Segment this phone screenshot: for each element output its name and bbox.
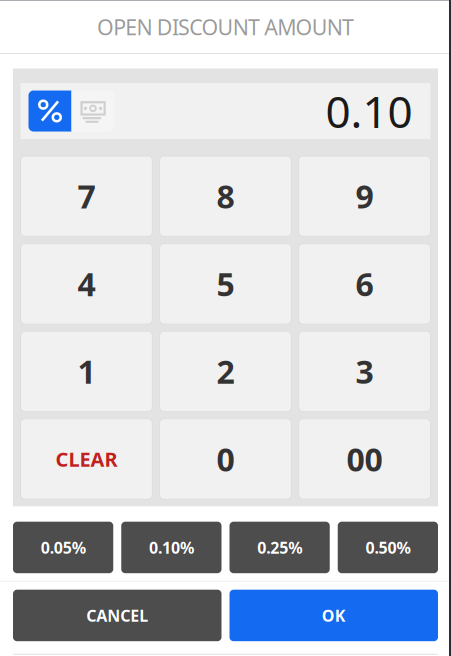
staticText: CLEAR: [55, 446, 117, 472]
button[interactable]: 8: [160, 156, 291, 236]
staticText: 0.05%: [41, 537, 86, 558]
button[interactable]: 0.25%: [229, 522, 330, 573]
staticText: OK: [322, 605, 346, 626]
button[interactable]: 9: [299, 156, 430, 236]
button[interactable]: Amount discount: [71, 90, 114, 131]
staticText: 00: [347, 438, 383, 480]
staticText: OPEN DISCOUNT AMOUNT: [97, 13, 354, 41]
button[interactable]: 0: [160, 419, 291, 499]
button[interactable]: 6: [299, 244, 430, 324]
button[interactable]: 0.05%: [13, 522, 113, 573]
button[interactable]: 7: [20, 156, 152, 236]
staticText: 3: [356, 350, 374, 393]
staticText: 2: [216, 350, 234, 393]
button[interactable]: 3: [299, 331, 430, 412]
staticText: 0.10%: [149, 537, 194, 558]
staticText: 0.25%: [257, 537, 302, 558]
staticText: 6: [356, 263, 374, 305]
staticText: 7: [77, 175, 95, 217]
button[interactable]: Percent discount: [28, 90, 71, 131]
button[interactable]: CANCEL: [13, 590, 221, 641]
staticText: 5: [216, 263, 234, 305]
button[interactable]: 1: [20, 331, 152, 412]
staticText: CANCEL: [86, 605, 148, 626]
button[interactable]: CLEAR: [20, 419, 152, 499]
staticText: 8: [216, 175, 234, 217]
staticText: 9: [356, 175, 374, 217]
button[interactable]: 5: [160, 244, 291, 324]
staticText: 0.10: [325, 82, 412, 140]
staticText: 1: [77, 350, 95, 393]
button[interactable]: 0.10%: [121, 522, 221, 573]
button[interactable]: 00: [299, 419, 430, 499]
button[interactable]: 0.50%: [338, 522, 438, 573]
staticText: 0.50%: [365, 537, 410, 558]
staticText: 4: [77, 263, 95, 305]
button[interactable]: OK: [229, 590, 438, 641]
button[interactable]: 2: [160, 331, 291, 412]
button[interactable]: 4: [20, 244, 152, 324]
staticText: 0: [216, 438, 234, 480]
